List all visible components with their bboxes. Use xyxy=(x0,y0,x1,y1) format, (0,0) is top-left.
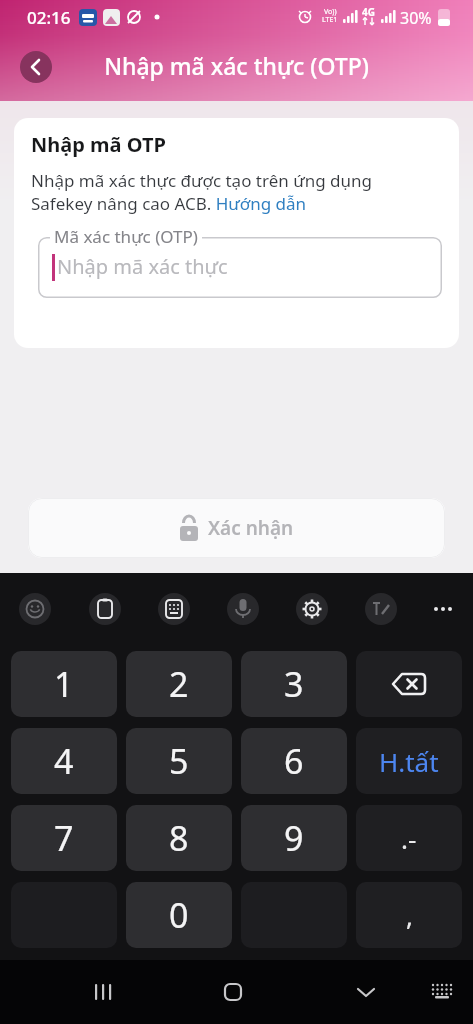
button[interactable] xyxy=(20,51,52,83)
staticText: 1 xyxy=(54,661,74,707)
button[interactable] xyxy=(80,970,124,1014)
button[interactable]: 4 xyxy=(11,728,117,794)
button[interactable] xyxy=(365,593,397,625)
staticText: 6 xyxy=(284,738,304,784)
button[interactable]: 6 xyxy=(241,728,347,794)
staticText: 02:16 xyxy=(27,6,71,29)
button[interactable] xyxy=(89,593,121,625)
staticText: , xyxy=(406,898,413,933)
staticText: 8 xyxy=(169,815,189,861)
button[interactable] xyxy=(211,970,255,1014)
staticText: 5 xyxy=(169,738,189,784)
staticText: Nhập mã xác thực xyxy=(57,253,228,280)
staticText: Nhập mã OTP xyxy=(31,131,166,158)
button[interactable]: 1 xyxy=(11,651,117,717)
button[interactable]: 0 xyxy=(126,882,232,948)
staticText: 7 xyxy=(54,815,74,861)
button[interactable]: , xyxy=(356,882,462,948)
staticText: 3 xyxy=(284,661,304,707)
button[interactable]: 2 xyxy=(126,651,232,717)
button[interactable] xyxy=(19,593,51,625)
button[interactable] xyxy=(296,593,328,625)
button[interactable]: 3 xyxy=(241,651,347,717)
button[interactable]: 9 xyxy=(241,805,347,871)
staticText: Xác nhận xyxy=(208,515,294,541)
staticText: 9 xyxy=(284,815,304,861)
button[interactable] xyxy=(356,651,462,717)
button[interactable]: 7 xyxy=(11,805,117,871)
staticText: 30% xyxy=(400,7,432,29)
staticText: H.tất xyxy=(379,744,439,779)
staticText: Mã xác thực (OTP) xyxy=(54,225,198,248)
staticText: Vo)) xyxy=(324,7,337,17)
button[interactable] xyxy=(344,970,388,1014)
button[interactable] xyxy=(158,593,190,625)
staticText: 0 xyxy=(169,892,189,938)
staticText: 4G xyxy=(362,5,375,19)
staticText: Nhập mã xác thực được tạo trên ứng dụng … xyxy=(31,169,451,215)
button[interactable]: 8 xyxy=(126,805,232,871)
staticText: .- xyxy=(401,821,417,856)
button[interactable]: Xác nhận xyxy=(28,498,445,558)
button[interactable] xyxy=(427,593,459,625)
staticText: LTE1 xyxy=(322,15,338,25)
button[interactable]: 5 xyxy=(126,728,232,794)
button[interactable]: H.tất xyxy=(356,728,462,794)
staticText: 2 xyxy=(169,661,189,707)
button[interactable] xyxy=(227,593,259,625)
staticText: 4 xyxy=(54,738,74,784)
staticText: Nhập mã xác thực (OTP) xyxy=(0,50,473,81)
button[interactable]: .- xyxy=(356,805,462,871)
button[interactable] xyxy=(420,970,464,1014)
